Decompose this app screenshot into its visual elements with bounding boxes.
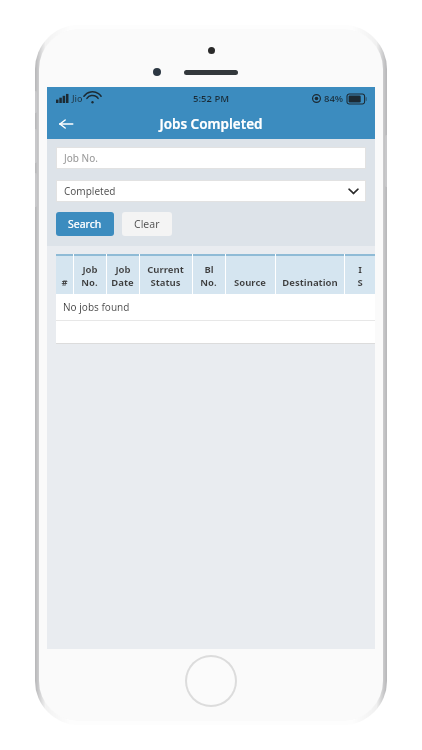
button[interactable]: Job No. bbox=[56, 147, 366, 169]
staticText: Jobs Completed bbox=[159, 115, 263, 133]
staticText: I bbox=[358, 263, 362, 276]
staticText: Job No. bbox=[64, 151, 98, 165]
staticText: 5:52 PM bbox=[193, 92, 230, 105]
button[interactable]: Source bbox=[225, 254, 275, 294]
button[interactable]: I bbox=[344, 254, 375, 294]
staticText: Destination bbox=[282, 276, 338, 289]
staticText: Clear bbox=[134, 217, 160, 231]
staticText: Job bbox=[82, 263, 98, 276]
staticText: No jobs found bbox=[63, 300, 130, 314]
button[interactable]: Current bbox=[139, 254, 192, 294]
button[interactable]: Job bbox=[73, 254, 106, 294]
staticText: Completed bbox=[64, 184, 116, 198]
staticText: Date bbox=[111, 276, 134, 289]
button[interactable]: Back bbox=[51, 109, 81, 139]
button[interactable]: Clear bbox=[122, 212, 172, 236]
staticText: Status bbox=[150, 276, 181, 289]
staticText: # bbox=[61, 276, 68, 289]
button[interactable]: Search bbox=[56, 212, 114, 236]
staticText: No. bbox=[81, 276, 98, 289]
button[interactable]: Completed bbox=[56, 180, 366, 202]
staticText: Search bbox=[68, 217, 102, 231]
staticText: No. bbox=[200, 276, 217, 289]
staticText: Jio bbox=[72, 92, 83, 104]
staticText: Job bbox=[115, 263, 131, 276]
staticText: Bl bbox=[204, 263, 214, 276]
button[interactable]: Destination bbox=[275, 254, 344, 294]
button[interactable]: # bbox=[56, 254, 73, 294]
staticText: Current bbox=[147, 263, 184, 276]
staticText: Source bbox=[234, 276, 266, 289]
button[interactable]: Bl bbox=[192, 254, 225, 294]
staticText: 84% bbox=[324, 92, 344, 105]
button[interactable]: Job bbox=[106, 254, 139, 294]
staticText: S bbox=[357, 276, 363, 289]
